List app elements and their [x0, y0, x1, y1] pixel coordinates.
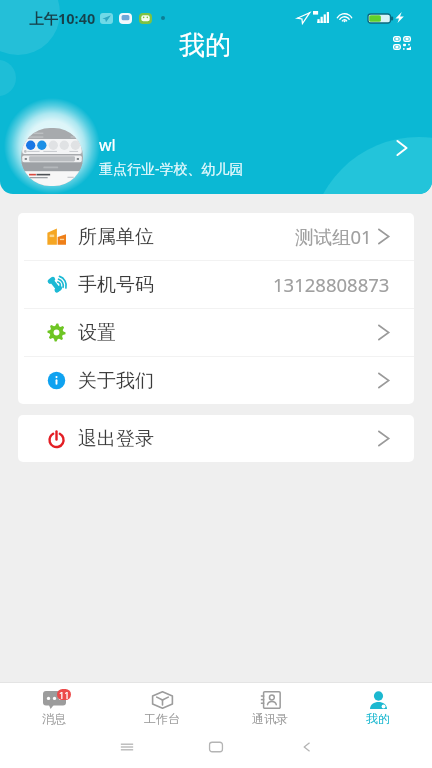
button[interactable]: Scan QR code: [393, 36, 411, 50]
staticText: 退出登录: [78, 427, 154, 451]
staticText: 13128808873: [273, 272, 390, 297]
button[interactable]: 我的: [324, 683, 432, 726]
staticText: 通讯录: [252, 711, 288, 726]
staticText: 工作台: [144, 711, 180, 726]
button[interactable]: 手机号码: [18, 261, 414, 308]
staticText: 关于我们: [78, 369, 154, 393]
staticText: 11: [59, 689, 70, 700]
staticText: 重点行业-学校、幼儿园: [99, 159, 244, 178]
staticText: 上午10:40: [29, 8, 96, 28]
staticText: 手机号码: [78, 273, 154, 297]
button[interactable]: Back: [293, 733, 321, 761]
button[interactable]: 所属单位: [18, 213, 414, 260]
staticText: 我的: [366, 711, 390, 726]
button[interactable]: 通讯录: [216, 683, 324, 726]
button[interactable]: wl: [0, 116, 432, 186]
staticText: 设置: [78, 321, 116, 345]
button[interactable]: Home: [202, 733, 230, 761]
button[interactable]: 工作台: [108, 683, 216, 726]
button[interactable]: 关于我们: [18, 357, 414, 404]
button[interactable]: 设置: [18, 309, 414, 356]
staticText: 测试组01: [295, 224, 372, 249]
staticText: 消息: [42, 711, 66, 726]
button[interactable]: Recent apps: [113, 733, 141, 761]
staticText: 我的: [179, 29, 231, 62]
button[interactable]: 退出登录: [18, 415, 414, 462]
staticText: 所属单位: [78, 225, 154, 249]
staticText: wl: [99, 134, 116, 156]
button[interactable]: 11: [0, 683, 108, 726]
